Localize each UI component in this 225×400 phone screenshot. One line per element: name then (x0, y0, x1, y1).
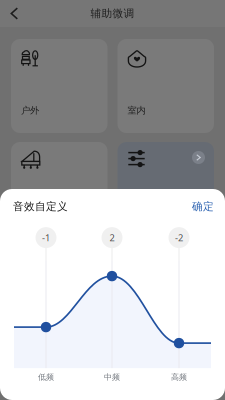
button[interactable] (11, 142, 107, 202)
button[interactable]: Back (0, 0, 29, 27)
staticText: 音效自定义 (13, 200, 68, 213)
staticText: 辅助微调 (90, 7, 134, 20)
staticText: 高频 (171, 372, 187, 382)
staticText: -2 (175, 231, 183, 244)
button[interactable] (117, 142, 214, 202)
staticText: 室内 (127, 104, 145, 116)
button[interactable]: 室内 (117, 39, 214, 133)
staticText: 确定 (192, 200, 214, 213)
button[interactable]: 户外 (11, 39, 107, 133)
staticText: -1 (42, 231, 50, 244)
staticText: 低频 (38, 372, 54, 382)
staticText: 中频 (104, 372, 120, 382)
staticText: 户外 (21, 104, 39, 116)
staticText: 2 (109, 231, 114, 244)
button[interactable]: 确定 (192, 200, 214, 213)
